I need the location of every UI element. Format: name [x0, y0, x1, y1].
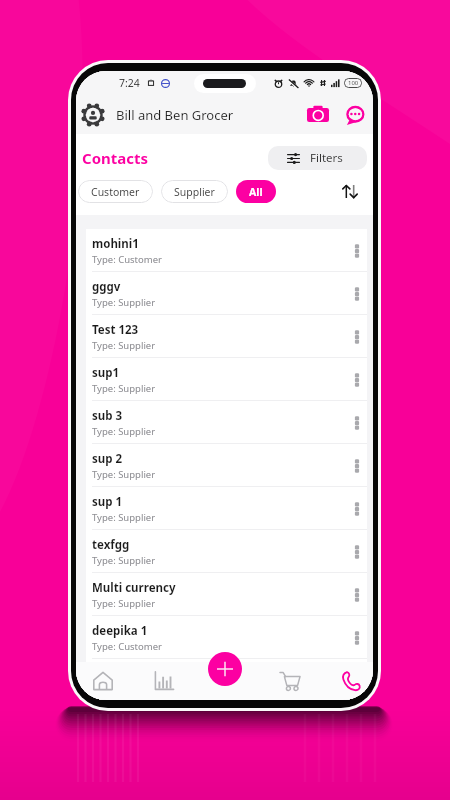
button[interactable]: Sort — [338, 179, 362, 203]
button[interactable]: Multi currency — [86, 573, 367, 616]
button[interactable]: texfgg — [86, 530, 367, 573]
button[interactable]: More options — [347, 284, 367, 304]
button[interactable]: sup1 — [86, 358, 367, 401]
button[interactable]: Account settings — [78, 100, 108, 130]
staticText: Bill and Ben Grocer — [116, 106, 234, 124]
staticText: Customer — [91, 185, 140, 199]
button[interactable]: sup 2 — [86, 444, 367, 487]
staticText: Type: Supplier — [92, 511, 156, 524]
staticText: Type: Supplier — [92, 296, 156, 309]
button[interactable]: Add — [208, 652, 242, 686]
button[interactable]: More options — [347, 241, 367, 261]
staticText: Type: Supplier — [92, 425, 156, 438]
staticText: Type: Supplier — [92, 597, 156, 610]
button[interactable]: mohini1 — [86, 229, 367, 272]
staticText: Filters — [310, 150, 343, 166]
staticText: abc corp — [92, 665, 141, 681]
button[interactable]: Call — [338, 662, 363, 700]
button[interactable]: abc corp — [86, 659, 367, 700]
staticText: texfgg — [92, 537, 130, 553]
staticText: Supplier — [174, 185, 215, 199]
staticText: Multi currency — [92, 580, 176, 596]
staticText: mohini1 — [92, 236, 139, 252]
button[interactable]: More options — [347, 628, 367, 648]
staticText: Test 123 — [92, 322, 139, 338]
staticText: Contacts — [82, 148, 149, 168]
button[interactable]: Customer — [78, 180, 153, 203]
button[interactable]: More options — [347, 370, 367, 390]
button[interactable]: deepika 1 — [86, 616, 367, 659]
button[interactable]: Test 123 — [86, 315, 367, 358]
button[interactable]: More options — [347, 499, 367, 519]
staticText: Type: Supplier — [92, 554, 156, 567]
button[interactable]: sup 1 — [86, 487, 367, 530]
staticText: 100 — [348, 79, 359, 87]
button[interactable]: More options — [347, 327, 367, 347]
button[interactable]: More options — [347, 542, 367, 562]
staticText: Type: Supplier — [92, 468, 156, 481]
button[interactable]: sub 3 — [86, 401, 367, 444]
staticText: Type: Customer — [92, 640, 162, 653]
staticText: 7:24 — [119, 76, 140, 90]
staticText: sup1 — [92, 365, 120, 381]
staticText: All — [249, 185, 263, 199]
staticText: sub 3 — [92, 408, 123, 424]
button[interactable]: More options — [347, 585, 367, 605]
staticText: Type: Supplier — [92, 339, 156, 352]
button[interactable]: Home — [90, 662, 115, 700]
button[interactable]: More options — [347, 670, 367, 690]
button[interactable]: gggv — [86, 272, 367, 315]
button[interactable]: Filters — [268, 146, 367, 170]
button[interactable]: Supplier — [161, 180, 228, 203]
button[interactable]: More options — [347, 456, 367, 476]
staticText: Type: Supplier — [92, 682, 156, 695]
button[interactable]: Chat — [341, 102, 367, 128]
button[interactable]: Reports — [151, 662, 176, 700]
staticText: Type: Supplier — [92, 382, 156, 395]
staticText: sup 2 — [92, 451, 123, 467]
button[interactable]: Camera — [304, 101, 332, 129]
staticText: Type: Customer — [92, 253, 162, 266]
button[interactable]: Cart — [277, 662, 302, 700]
staticText: deepika 1 — [92, 623, 148, 639]
staticText: gggv — [92, 279, 121, 295]
button[interactable]: All — [236, 180, 276, 203]
staticText: sup 1 — [92, 494, 123, 510]
button[interactable]: More options — [347, 413, 367, 433]
